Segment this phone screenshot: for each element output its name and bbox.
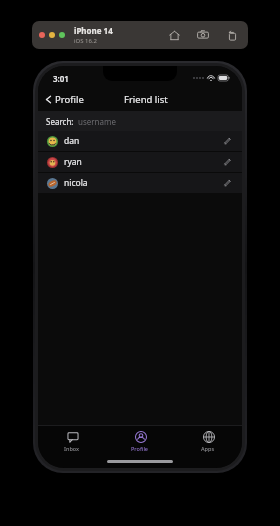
button[interactable]: nicola xyxy=(38,173,242,193)
staticText: Inbox xyxy=(64,445,80,452)
button[interactable]: Profile xyxy=(106,427,174,455)
button[interactable]: ryan xyxy=(38,152,242,172)
button[interactable]: Zoom xyxy=(59,32,65,38)
staticText: Apps xyxy=(201,445,215,452)
staticText: dan xyxy=(64,135,80,147)
staticText: Friend list xyxy=(124,93,168,106)
staticText: Search: xyxy=(46,116,74,127)
button[interactable]: Minimise xyxy=(49,32,55,38)
button[interactable]: Inbox xyxy=(38,427,106,455)
button[interactable]: Rotate xyxy=(224,27,240,43)
button[interactable]: Edit dan xyxy=(221,135,233,147)
button[interactable]: Home xyxy=(166,27,182,43)
staticText: 3:01 xyxy=(53,73,69,84)
button[interactable]: Edit nicola xyxy=(221,177,233,189)
button[interactable]: Search: xyxy=(38,111,242,131)
staticText: Profile xyxy=(55,93,84,106)
button[interactable]: Apps xyxy=(174,427,242,455)
staticText: username xyxy=(78,116,117,127)
button[interactable]: Profile xyxy=(44,93,84,106)
staticText: iPhone 14 xyxy=(74,25,113,36)
button[interactable]: Screenshot xyxy=(195,27,211,43)
staticText: iOS 16.2 xyxy=(74,37,97,45)
staticText: ryan xyxy=(64,156,82,168)
button[interactable]: Edit ryan xyxy=(221,156,233,168)
button[interactable]: Close xyxy=(39,32,45,38)
button[interactable]: dan xyxy=(38,131,242,151)
staticText: Profile xyxy=(131,445,149,452)
staticText: nicola xyxy=(64,177,88,189)
